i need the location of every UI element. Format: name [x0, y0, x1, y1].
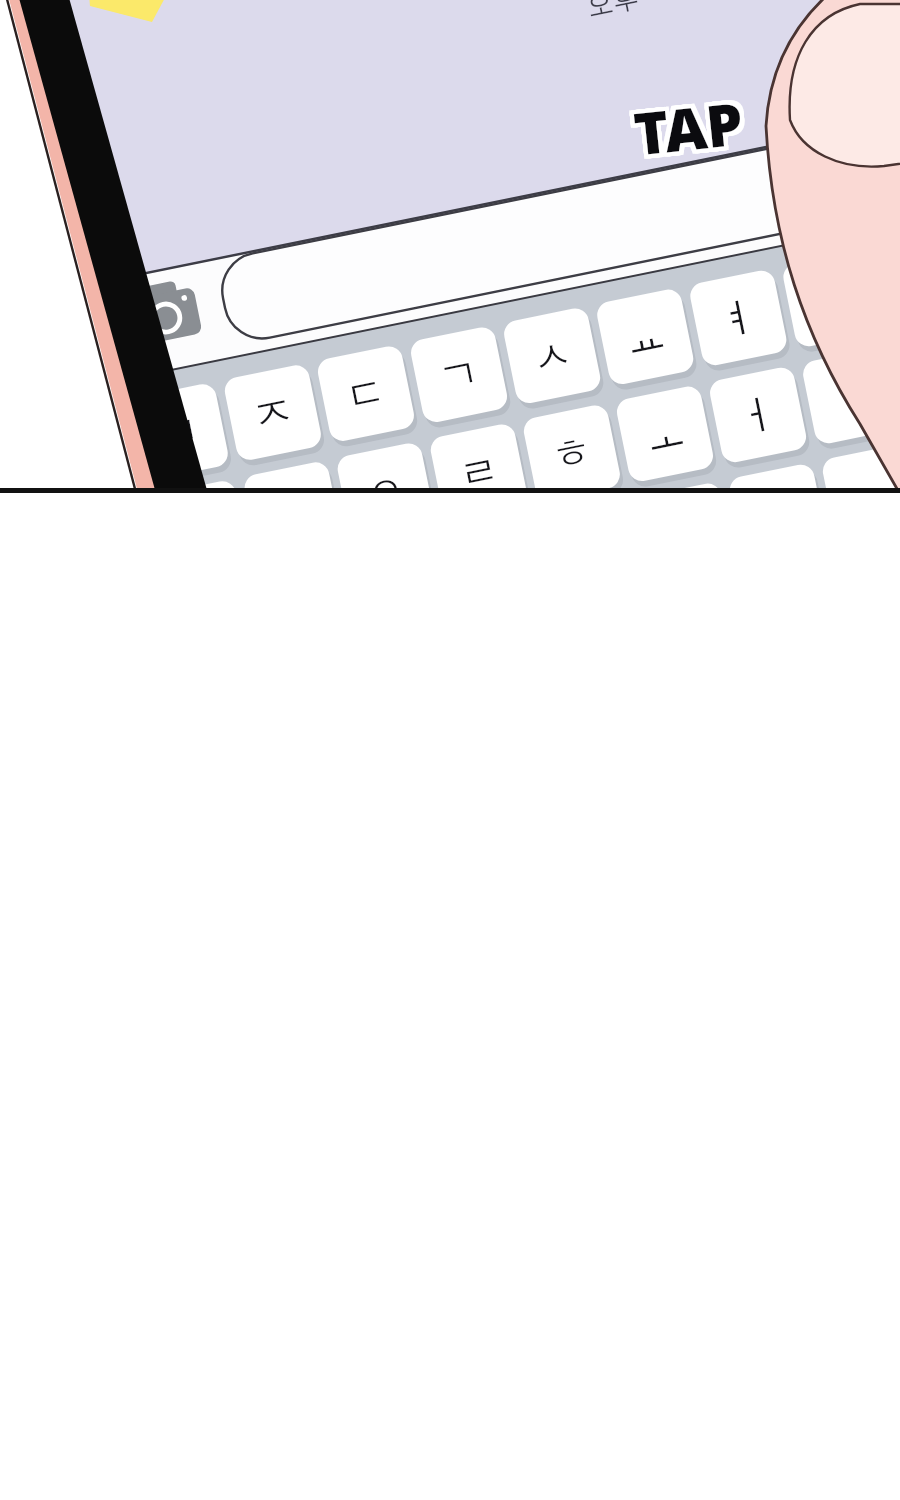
button[interactable]: Comic panel: finger tapping a phone keyb…: [0, 0, 900, 1500]
